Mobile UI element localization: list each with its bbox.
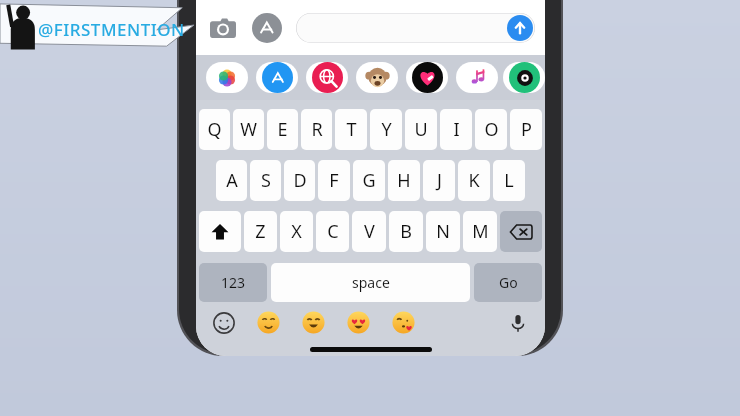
- button[interactable]: Z: [244, 211, 277, 252]
- staticText: R: [311, 117, 323, 142]
- button[interactable]: E: [267, 109, 298, 150]
- button[interactable]: L: [493, 160, 525, 201]
- button[interactable]: Relieved face: [255, 309, 282, 336]
- button[interactable]: O: [475, 109, 507, 150]
- button[interactable]: I: [440, 109, 472, 150]
- button[interactable]: Music: [452, 55, 502, 100]
- button[interactable]: X: [280, 211, 313, 252]
- staticText: @FIRSTMENTION: [38, 18, 185, 41]
- staticText: F: [329, 168, 339, 193]
- staticText: V: [364, 219, 375, 244]
- button[interactable]: Emoji keyboard: [210, 309, 237, 336]
- button[interactable]: R: [301, 109, 332, 150]
- button[interactable]: F: [318, 160, 350, 201]
- button[interactable]: Photos: [202, 55, 252, 100]
- staticText: Q: [207, 117, 222, 142]
- button[interactable]: space: [271, 263, 470, 302]
- button[interactable]: More apps: [502, 55, 545, 100]
- staticText: Go: [499, 273, 518, 292]
- button[interactable]: M: [463, 211, 497, 252]
- staticText: B: [400, 219, 412, 244]
- button[interactable]: D: [284, 160, 315, 201]
- button[interactable]: Shift: [199, 211, 241, 252]
- button[interactable]: Q: [199, 109, 230, 150]
- button[interactable]: iMessage text field: [296, 13, 535, 43]
- button[interactable]: P: [510, 109, 542, 150]
- button[interactable]: Memoji: [352, 55, 402, 100]
- button[interactable]: Dictation: [504, 309, 531, 336]
- staticText: I: [453, 117, 460, 142]
- button[interactable]: J: [423, 160, 455, 201]
- button[interactable]: A: [216, 160, 247, 201]
- button[interactable]: W: [233, 109, 264, 150]
- button[interactable]: H: [388, 160, 420, 201]
- staticText: T: [346, 117, 357, 142]
- button[interactable]: Backspace: [500, 211, 542, 252]
- staticText: C: [327, 219, 339, 244]
- button[interactable]: App Store: [252, 55, 302, 100]
- staticText: W: [240, 117, 257, 142]
- staticText: J: [437, 168, 442, 193]
- button[interactable]: Heart eyes face: [345, 309, 372, 336]
- staticText: Z: [255, 219, 266, 244]
- button[interactable]: N: [426, 211, 460, 252]
- staticText: D: [293, 168, 307, 193]
- button[interactable]: V: [352, 211, 386, 252]
- button[interactable]: Y: [370, 109, 402, 150]
- button[interactable]: G: [353, 160, 385, 201]
- staticText: 123: [221, 273, 246, 292]
- button[interactable]: S: [250, 160, 281, 201]
- button[interactable]: K: [458, 160, 490, 201]
- staticText: U: [414, 117, 428, 142]
- button[interactable]: App Store: [252, 13, 282, 43]
- button[interactable]: Smiling face: [300, 309, 327, 336]
- button[interactable]: 123: [199, 263, 267, 302]
- staticText: A: [226, 168, 238, 193]
- staticText: O: [484, 117, 499, 142]
- staticText: K: [468, 168, 480, 193]
- button[interactable]: C: [316, 211, 349, 252]
- button[interactable]: Go: [474, 263, 542, 302]
- button[interactable]: U: [405, 109, 437, 150]
- button[interactable]: Digital Touch: [402, 55, 452, 100]
- staticText: X: [291, 219, 302, 244]
- staticText: G: [362, 168, 376, 193]
- staticText: Y: [381, 117, 392, 142]
- button[interactable]: Send: [507, 15, 533, 41]
- staticText: M: [472, 219, 489, 244]
- button[interactable]: T: [335, 109, 367, 150]
- staticText: H: [397, 168, 411, 193]
- button[interactable]: Kissing face: [390, 309, 417, 336]
- staticText: space: [352, 273, 390, 292]
- staticText: P: [521, 117, 532, 142]
- staticText: E: [277, 117, 288, 142]
- staticText: S: [261, 168, 271, 193]
- staticText: N: [436, 219, 450, 244]
- button[interactable]: Camera: [206, 11, 240, 45]
- staticText: L: [504, 168, 514, 193]
- button[interactable]: B: [389, 211, 423, 252]
- button[interactable]: Images: [302, 55, 352, 100]
